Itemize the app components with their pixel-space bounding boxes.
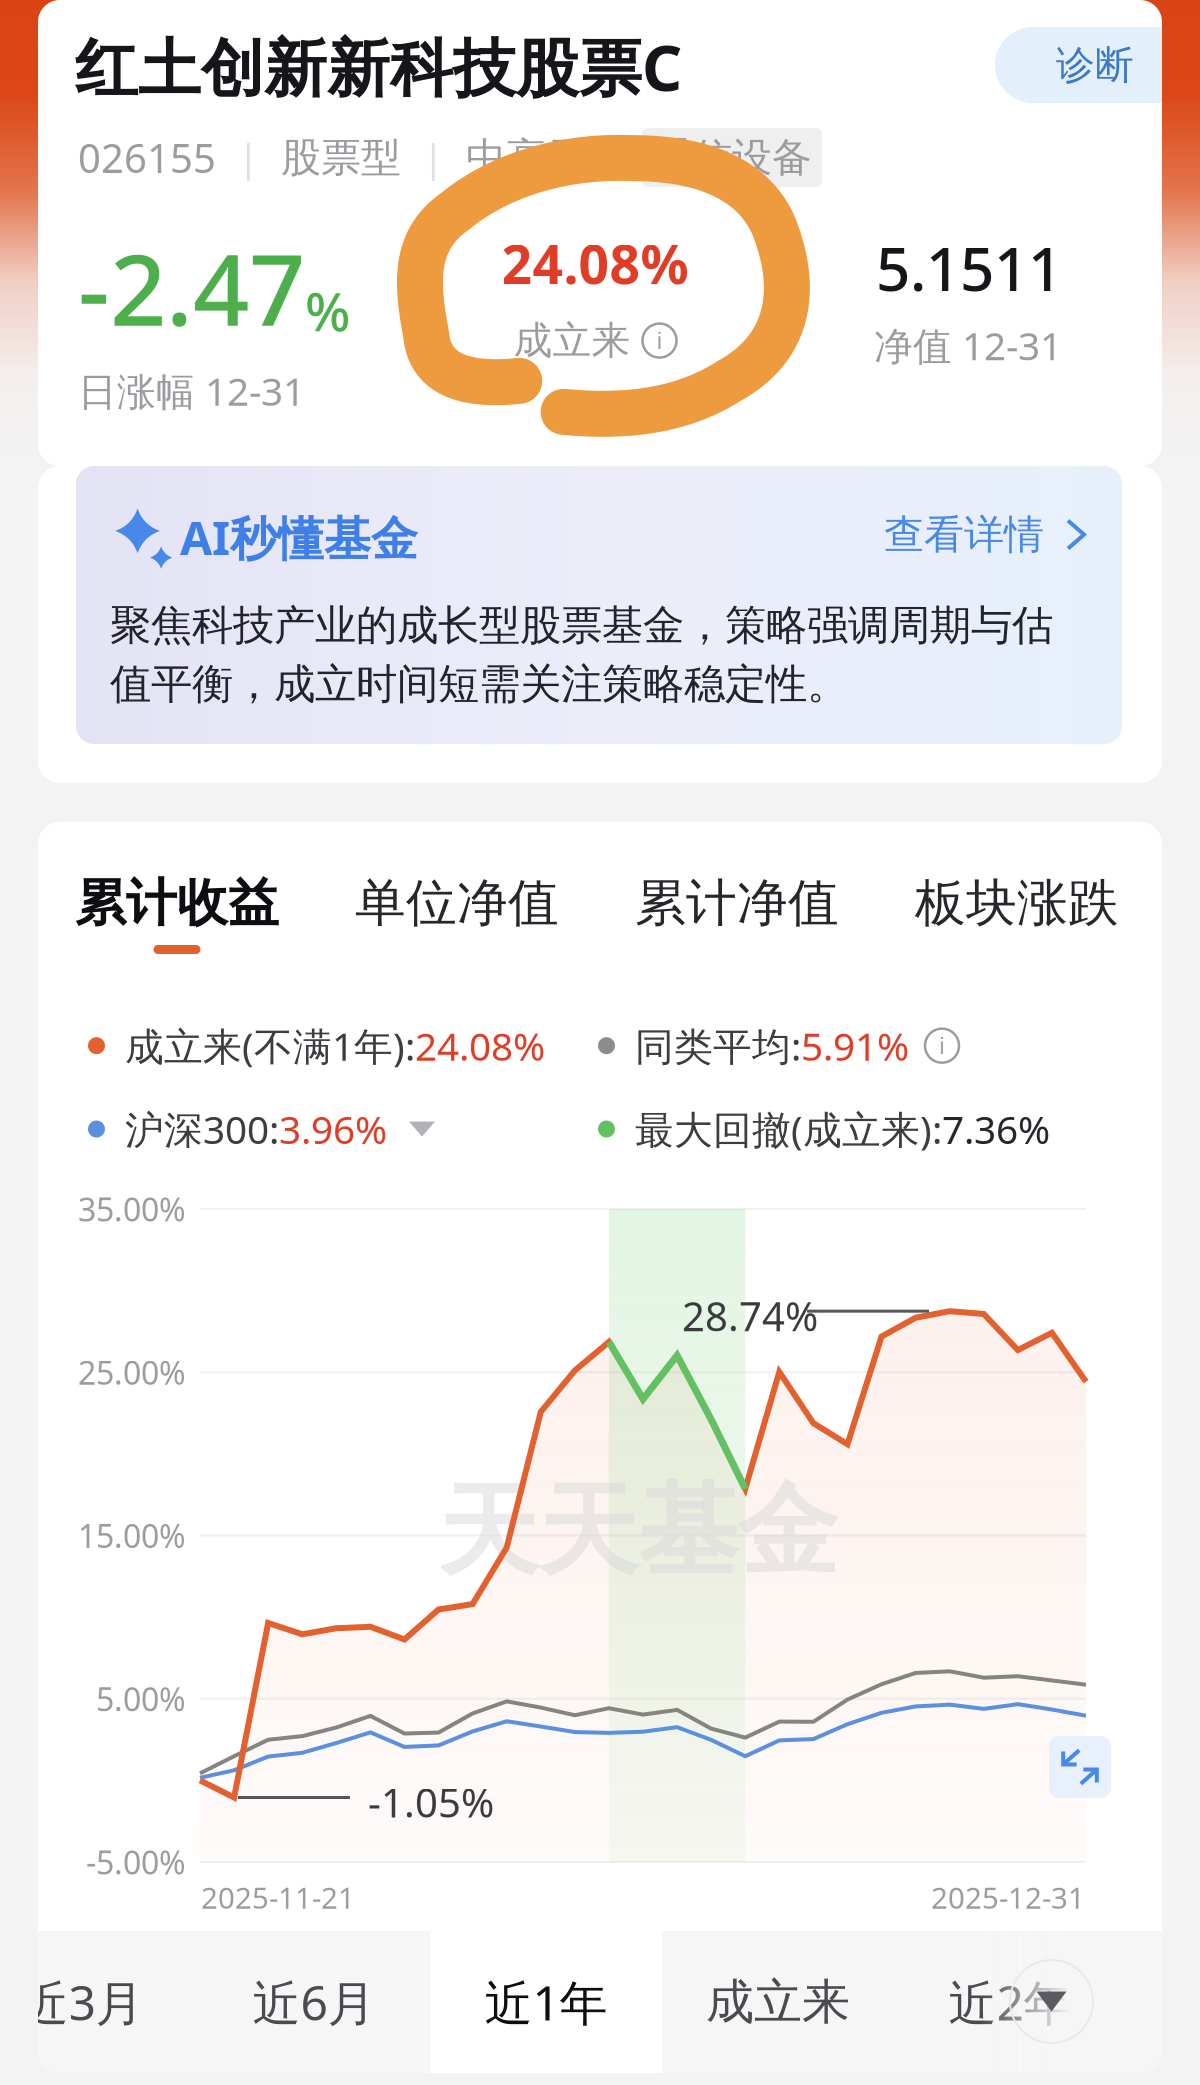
staticText: i xyxy=(939,1031,945,1061)
staticText: 2025-12-31 xyxy=(931,1878,1085,1917)
staticText: 单位净值 xyxy=(355,872,559,934)
button[interactable]: AI秒懂基金 xyxy=(76,466,1122,744)
staticText: -1.05% xyxy=(368,1775,494,1829)
staticText: 板块涨跌 xyxy=(915,872,1119,934)
button[interactable]: 近6月 xyxy=(198,1931,430,2073)
staticText: 5.00% xyxy=(96,1677,186,1720)
staticText: 35.00% xyxy=(78,1188,186,1230)
button[interactable]: 板块涨跌 xyxy=(915,872,1119,972)
button[interactable]: 近2年 xyxy=(894,1931,1126,2073)
staticText: 最大回撤(成立来): xyxy=(635,1103,942,1155)
staticText: 中高风险 xyxy=(466,133,626,182)
staticText: | xyxy=(423,133,444,182)
button[interactable]: Expand chart xyxy=(1049,1736,1111,1798)
button[interactable]: More periods xyxy=(1010,1960,1093,2043)
staticText: | xyxy=(238,133,259,182)
staticText: % xyxy=(305,275,350,346)
staticText: 5.91% xyxy=(801,1020,909,1071)
staticText: 15.00% xyxy=(78,1514,186,1557)
staticText: 成立来 xyxy=(513,317,630,364)
staticText: 净值 12-31 xyxy=(874,320,1062,371)
staticText: 026155 xyxy=(78,131,216,184)
button[interactable]: 单位净值 xyxy=(355,872,559,972)
staticText: 累计净值 xyxy=(635,872,839,934)
staticText: 近3月 xyxy=(20,1970,143,2034)
staticText: 近1年 xyxy=(484,1970,607,2034)
staticText: 聚焦科技产业的成长型股票基金，策略强调周期与估值平衡，成立时间短需关注策略稳定性… xyxy=(110,600,1053,709)
staticText: 累计收益 xyxy=(75,872,279,934)
staticText: 3.96% xyxy=(279,1103,387,1155)
button[interactable]: 成立来 xyxy=(662,1931,894,2073)
staticText: 同类平均: xyxy=(635,1020,801,1071)
staticText: 股票型 xyxy=(281,133,401,182)
button[interactable]: 诊断 xyxy=(995,27,1195,103)
staticText: 25.00% xyxy=(78,1351,186,1393)
staticText: AI秒懂基金 xyxy=(180,506,418,568)
staticText: 近2年 xyxy=(948,1970,1071,2034)
staticText: 5.1511 xyxy=(876,228,1062,308)
button[interactable]: 累计收益 xyxy=(75,872,279,972)
staticText: 2025-11-21 xyxy=(201,1878,355,1917)
staticText: 日涨幅 12-31 xyxy=(78,365,305,416)
staticText: 成立来(不满1年): xyxy=(125,1020,415,1071)
staticText: 7.36% xyxy=(942,1103,1050,1155)
button[interactable]: 近3月 xyxy=(0,1931,198,2073)
staticText: 查看详情 xyxy=(884,510,1044,559)
staticText: 天天基金 xyxy=(438,1470,838,1593)
staticText: -2.47 xyxy=(78,222,305,353)
staticText: 诊断 xyxy=(1056,41,1134,89)
button[interactable]: 累计净值 xyxy=(635,872,839,972)
staticText: -5.00% xyxy=(86,1841,186,1883)
staticText: 通信设备 xyxy=(652,133,812,182)
staticText: 近6月 xyxy=(252,1970,375,2034)
staticText: 成立来 xyxy=(706,1972,850,2031)
staticText: 红土创新新科技股票C xyxy=(75,25,682,108)
staticText: i xyxy=(656,325,662,356)
button[interactable]: 近1年 xyxy=(430,1931,662,2073)
staticText: 24.08% xyxy=(415,1020,545,1071)
staticText: 24.08% xyxy=(501,228,688,299)
staticText: 沪深300: xyxy=(125,1103,279,1155)
staticText: 28.74% xyxy=(682,1289,818,1342)
